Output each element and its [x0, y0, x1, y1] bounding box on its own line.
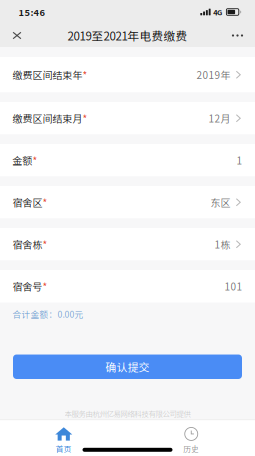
staticText: 本服务由杭州亿易网络科技有限公司提供: [64, 408, 190, 419]
button[interactable]: 确认提交: [13, 354, 242, 379]
staticText: 12月: [209, 111, 231, 125]
staticText: *: [43, 195, 48, 209]
button[interactable]: 缴费区间结束月: [0, 102, 255, 134]
staticText: 1栋: [215, 237, 231, 251]
staticText: 101: [224, 279, 242, 293]
staticText: 15:46: [18, 5, 45, 19]
staticText: 2019至2021年电费缴费: [67, 27, 187, 44]
staticText: *: [83, 111, 88, 125]
staticText: 宿舍栋: [13, 237, 43, 251]
staticText: *: [33, 153, 38, 167]
staticText: *: [83, 67, 88, 82]
staticText: *: [43, 237, 48, 251]
staticText: 2019年: [197, 67, 231, 82]
staticText: 宿舍号: [13, 279, 43, 293]
staticText: 宿舍区: [13, 195, 43, 209]
staticText: 金额: [13, 153, 33, 167]
staticText: 东区: [211, 195, 231, 209]
staticText: 合计金额：0.00元: [13, 308, 84, 320]
button[interactable]: More: [224, 24, 250, 47]
staticText: 1: [236, 153, 242, 167]
staticText: 历史: [183, 443, 199, 454]
button[interactable]: 首页: [0, 420, 127, 456]
button[interactable]: 宿舍号: [0, 270, 255, 302]
staticText: *: [43, 279, 48, 293]
button[interactable]: 历史: [127, 420, 255, 456]
staticText: 缴费区间结束年: [13, 67, 83, 82]
button[interactable]: Close: [4, 24, 30, 47]
button[interactable]: 宿舍区: [0, 186, 255, 218]
button[interactable]: 缴费区间结束年: [0, 57, 255, 92]
staticText: 确认提交: [105, 359, 149, 375]
staticText: 首页: [56, 443, 72, 454]
button[interactable]: 金额: [0, 144, 255, 176]
button[interactable]: 宿舍栋: [0, 228, 255, 260]
staticText: 缴费区间结束月: [13, 111, 83, 125]
staticText: 4G: [213, 7, 222, 17]
